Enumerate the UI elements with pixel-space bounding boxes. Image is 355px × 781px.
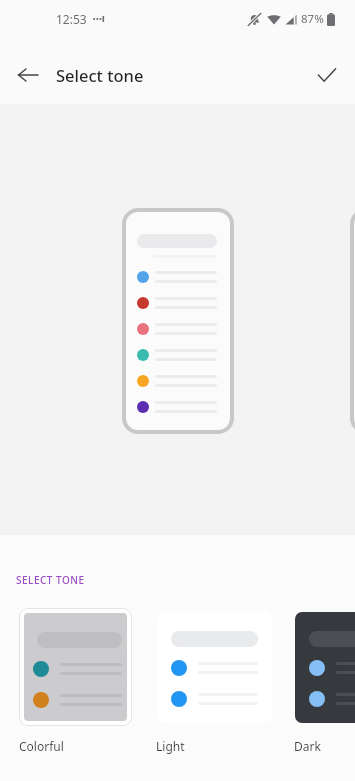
button[interactable]: Back bbox=[0, 46, 56, 104]
staticText: Dark bbox=[294, 738, 321, 754]
button[interactable]: Confirm bbox=[299, 46, 355, 104]
button[interactable]: Light bbox=[156, 608, 280, 754]
staticText: Light bbox=[156, 738, 185, 754]
staticText: Select tone bbox=[56, 64, 144, 86]
button[interactable]: Colorful bbox=[19, 608, 143, 754]
button[interactable]: Dark bbox=[294, 608, 355, 754]
staticText: Colorful bbox=[19, 738, 64, 754]
staticText: 12:53 bbox=[56, 11, 87, 27]
staticText: 87% bbox=[301, 11, 324, 27]
staticText: SELECT TONE bbox=[16, 573, 85, 587]
